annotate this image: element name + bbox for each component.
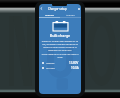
staticText: 13.80V xyxy=(69,61,79,64)
staticText: 10.0A xyxy=(71,66,79,69)
button[interactable]: Help xyxy=(77,7,81,11)
button[interactable]: Current xyxy=(39,66,81,69)
staticText: Voltage xyxy=(46,61,55,64)
button[interactable]: Back xyxy=(39,6,44,11)
staticText: Settings xyxy=(45,13,55,16)
staticText: Monitor xyxy=(66,13,76,16)
button[interactable]: Settings xyxy=(39,11,60,17)
button[interactable]: Monitor xyxy=(60,11,81,17)
button[interactable]: Voltage xyxy=(39,61,81,64)
staticText: Bulk charge xyxy=(39,33,81,38)
staticText: Current xyxy=(46,66,55,69)
staticText: Before in charge with voltage on all cel… xyxy=(41,40,79,52)
staticText: Charger setup xyxy=(48,7,67,11)
staticText: These settings of charge are used in cyc… xyxy=(39,53,81,59)
